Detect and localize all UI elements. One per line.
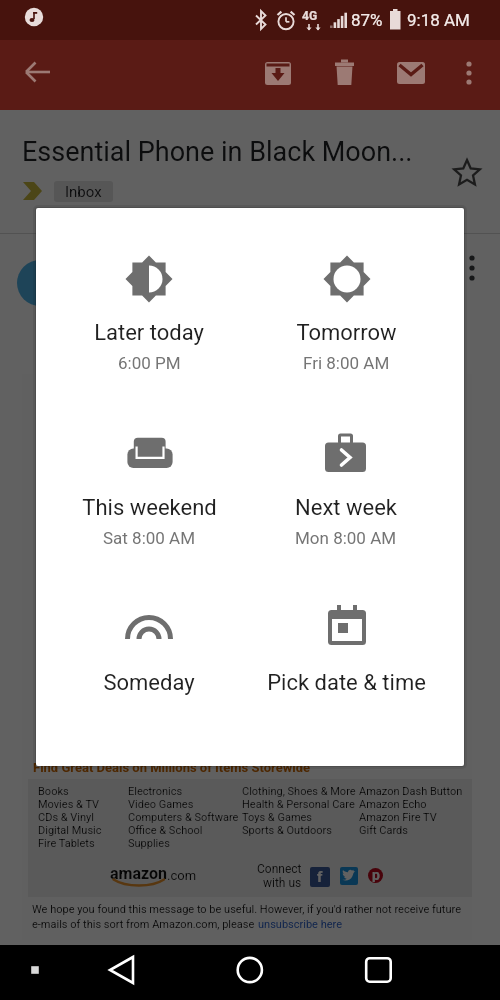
staticText: 4G — [302, 9, 318, 23]
staticText: 6:00 PM — [118, 353, 181, 373]
button[interactable]: unsubscribe here — [258, 918, 342, 931]
button[interactable]: Menu — [13, 948, 57, 992]
staticText: Fri 8:00 AM — [303, 353, 390, 373]
button[interactable]: Twitter — [340, 867, 358, 885]
staticText: Supplies — [128, 837, 170, 850]
staticText: Gift Cards — [359, 824, 408, 837]
staticText: Movies & TV — [38, 798, 100, 811]
staticText: Health & Personal Care — [242, 798, 355, 811]
staticText: Amazon Dash Button — [359, 785, 463, 798]
button[interactable]: Recents — [356, 948, 400, 992]
staticText: .com — [167, 868, 197, 883]
staticText: Connect — [257, 862, 302, 876]
staticText: Clothing, Shoes & More — [242, 785, 356, 798]
staticText: p — [372, 868, 380, 882]
staticText: CDs & Vinyl — [38, 811, 94, 824]
button[interactable]: amazon — [110, 864, 197, 883]
staticText: Amazon Fire TV — [359, 811, 437, 824]
staticText: Inbox — [65, 183, 102, 201]
button[interactable]: Next week — [251, 429, 441, 559]
staticText: Digital Music — [38, 824, 102, 837]
button[interactable]: Archive — [256, 51, 300, 95]
button[interactable]: Home — [228, 948, 272, 992]
button[interactable]: Mark unread — [388, 51, 432, 95]
button[interactable]: This weekend — [54, 429, 244, 559]
staticText: with us — [263, 876, 302, 890]
staticText: Fire Tablets — [38, 837, 95, 850]
staticText: Electronics — [128, 785, 183, 798]
staticText: Toys & Games — [242, 811, 313, 824]
staticText: Mon 8:00 AM — [295, 528, 397, 548]
staticText: Amazon.com — [84, 268, 185, 288]
staticText: Amazon Echo — [359, 798, 427, 811]
staticText: Computers & Software — [128, 811, 239, 824]
button[interactable]: Star — [447, 152, 487, 192]
staticText: e-mails of this sort from Amazon.com, pl… — [32, 918, 258, 931]
staticText: Sat 8:00 AM — [103, 528, 196, 548]
button[interactable]: Tomorrow — [251, 254, 441, 384]
button[interactable]: Later today — [54, 254, 244, 384]
staticText: Office & School — [128, 824, 203, 837]
staticText: Pick date & time — [267, 670, 426, 696]
staticText: Books — [38, 785, 69, 798]
staticText: Next week — [295, 495, 397, 521]
staticText: This weekend — [82, 495, 217, 521]
button[interactable]: Someday — [54, 604, 244, 734]
button[interactable]: Inbox — [54, 181, 113, 202]
staticText: f — [317, 868, 323, 886]
staticText: Video Games — [128, 798, 194, 811]
button[interactable]: Back — [16, 50, 60, 94]
staticText: We hope you found this message to be use… — [32, 903, 461, 916]
staticText: Essential Phone in Black Moon... — [22, 136, 413, 168]
button[interactable]: Facebook — [310, 867, 330, 887]
button[interactable]: Back — [100, 948, 144, 992]
button[interactable]: Pinterest — [368, 868, 383, 883]
staticText: amazon — [110, 864, 167, 883]
staticText: Later today — [94, 320, 204, 346]
staticText: 87% — [351, 10, 383, 30]
button[interactable]: More options — [449, 51, 489, 91]
staticText: 9:18 AM — [407, 10, 470, 30]
staticText: Tomorrow — [296, 320, 397, 346]
button[interactable]: Delete — [322, 51, 366, 95]
staticText: Sports & Outdoors — [242, 824, 332, 837]
staticText: Find Great Deals on Millions of Items St… — [33, 760, 311, 775]
staticText: Someday — [103, 670, 195, 696]
button[interactable]: Pick date & time — [251, 604, 441, 734]
